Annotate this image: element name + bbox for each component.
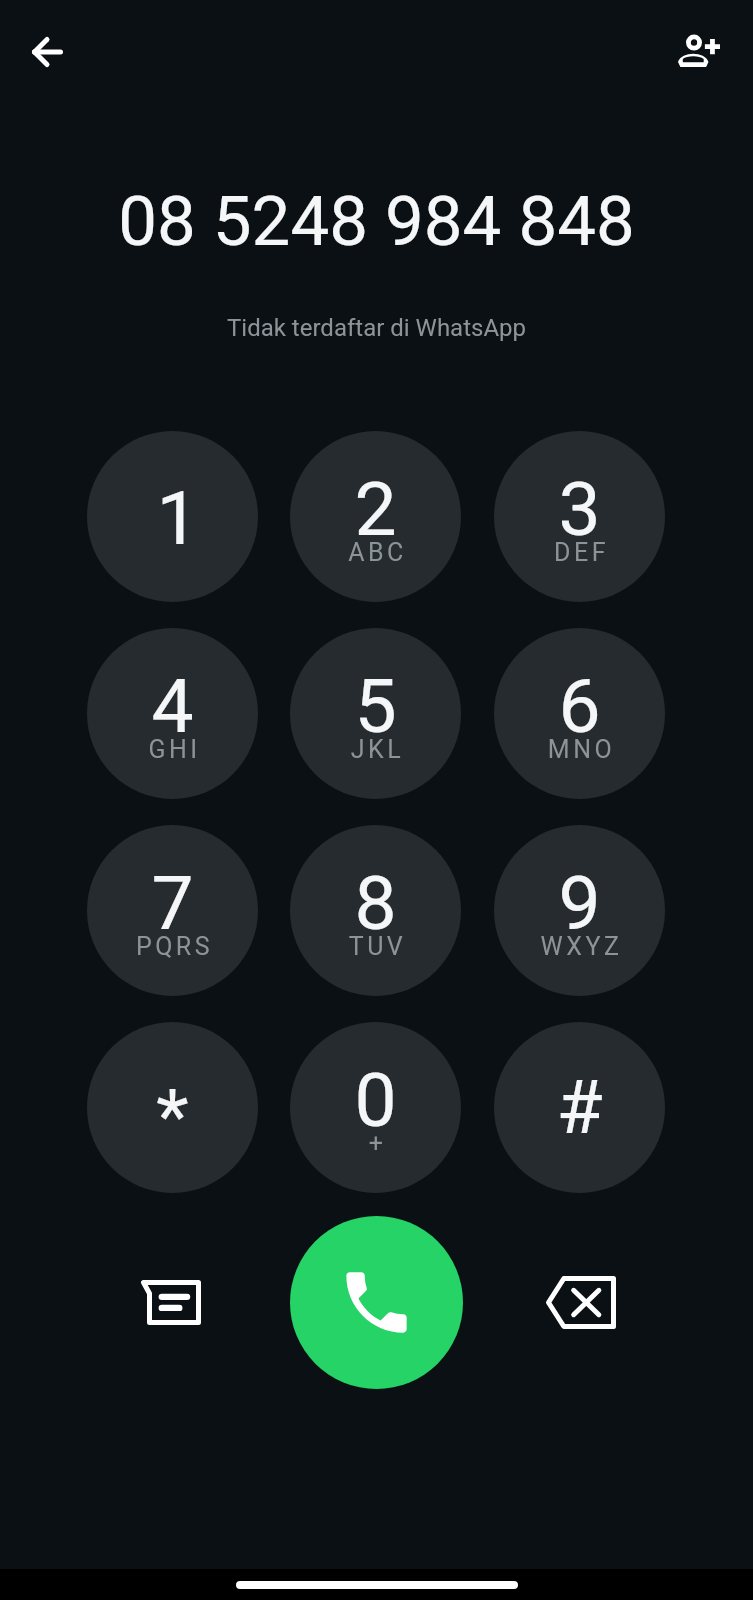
button[interactable]: # (494, 1022, 665, 1193)
button[interactable]: 6 (494, 628, 665, 799)
staticText: 6 (494, 662, 665, 750)
staticText: * (87, 1072, 258, 1160)
button[interactable]: 4 (87, 628, 258, 799)
staticText: 3 (494, 465, 665, 553)
staticText: 0 (290, 1056, 461, 1144)
button[interactable]: 0 (290, 1022, 461, 1193)
staticText: 2 (290, 465, 461, 553)
button[interactable]: 8 (290, 825, 461, 996)
staticText: GHI (89, 735, 258, 764)
staticText: 8 (290, 859, 461, 947)
button[interactable]: 3 (494, 431, 665, 602)
staticText: MNO (496, 735, 665, 764)
staticText: 7 (87, 859, 258, 947)
button[interactable]: 2 (290, 431, 461, 602)
staticText: + (292, 1129, 461, 1158)
button[interactable]: Send message (113, 1244, 229, 1360)
staticText: 4 (87, 662, 258, 750)
button[interactable]: Call (290, 1216, 463, 1389)
button[interactable]: 1 (87, 431, 258, 602)
staticText: JKL (292, 735, 461, 764)
staticText: 1 (92, 474, 258, 562)
staticText: 9 (494, 859, 665, 947)
button[interactable]: Add contact (655, 7, 743, 95)
staticText: # (494, 1063, 665, 1151)
button[interactable]: Backspace (523, 1244, 639, 1360)
staticText: ABC (292, 538, 461, 567)
staticText: WXYZ (496, 932, 665, 961)
staticText: DEF (496, 538, 665, 567)
staticText: 08 5248 984 848 (0, 181, 753, 262)
staticText: PQRS (89, 932, 258, 961)
staticText: 5 (290, 662, 461, 750)
button[interactable]: 5 (290, 628, 461, 799)
staticText: Tidak terdaftar di WhatsApp (0, 314, 753, 342)
staticText: TUV (292, 932, 461, 961)
button[interactable]: 9 (494, 825, 665, 996)
button[interactable]: 7 (87, 825, 258, 996)
button[interactable]: Back (8, 13, 86, 91)
button[interactable]: * (87, 1022, 258, 1193)
